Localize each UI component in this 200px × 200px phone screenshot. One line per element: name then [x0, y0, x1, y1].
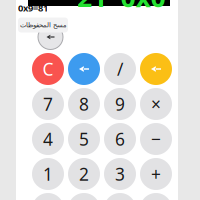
- button[interactable]: Delete: [38, 24, 63, 49]
- button[interactable]: 5: [68, 123, 100, 155]
- button[interactable]: 3: [104, 158, 136, 190]
- staticText: C: [42, 57, 53, 80]
- staticText: 6: [115, 127, 125, 150]
- button[interactable]: 7: [32, 88, 64, 120]
- staticText: ×: [151, 92, 161, 115]
- button[interactable]: 0: [104, 193, 136, 200]
- staticText: 1: [43, 162, 53, 185]
- staticText: 7: [43, 92, 53, 115]
- button[interactable]: %: [32, 193, 64, 200]
- staticText: +: [151, 162, 161, 185]
- button[interactable]: /: [104, 53, 136, 85]
- button[interactable]: 4: [32, 123, 64, 155]
- button[interactable]: 1: [32, 158, 64, 190]
- button[interactable]: −: [140, 123, 172, 155]
- button[interactable]: مسح المحفوظات: [18, 17, 68, 32]
- staticText: 2: [79, 162, 89, 185]
- button[interactable]: =: [140, 193, 172, 200]
- button[interactable]: 2: [68, 158, 100, 190]
- button[interactable]: Redo: [140, 53, 172, 85]
- button[interactable]: 9: [104, 88, 136, 120]
- staticText: −: [151, 127, 161, 150]
- staticText: 0x0: [120, 0, 165, 15]
- button[interactable]: C: [32, 53, 64, 85]
- staticText: 21: [77, 0, 107, 15]
- button[interactable]: 8: [68, 88, 100, 120]
- button[interactable]: 6: [104, 123, 136, 155]
- staticText: 4: [43, 127, 53, 150]
- staticText: مسح المحفوظات: [19, 21, 66, 29]
- button[interactable]: Delete: [68, 53, 100, 85]
- staticText: 9: [115, 92, 125, 115]
- staticText: /: [117, 57, 123, 80]
- button[interactable]: +: [140, 158, 172, 190]
- staticText: 3: [115, 162, 125, 185]
- staticText: 5: [79, 127, 89, 150]
- button[interactable]: ×: [140, 88, 172, 120]
- staticText: 8: [79, 92, 89, 115]
- staticText: 0x9=81: [18, 2, 48, 14]
- button[interactable]: +/-: [68, 193, 100, 200]
